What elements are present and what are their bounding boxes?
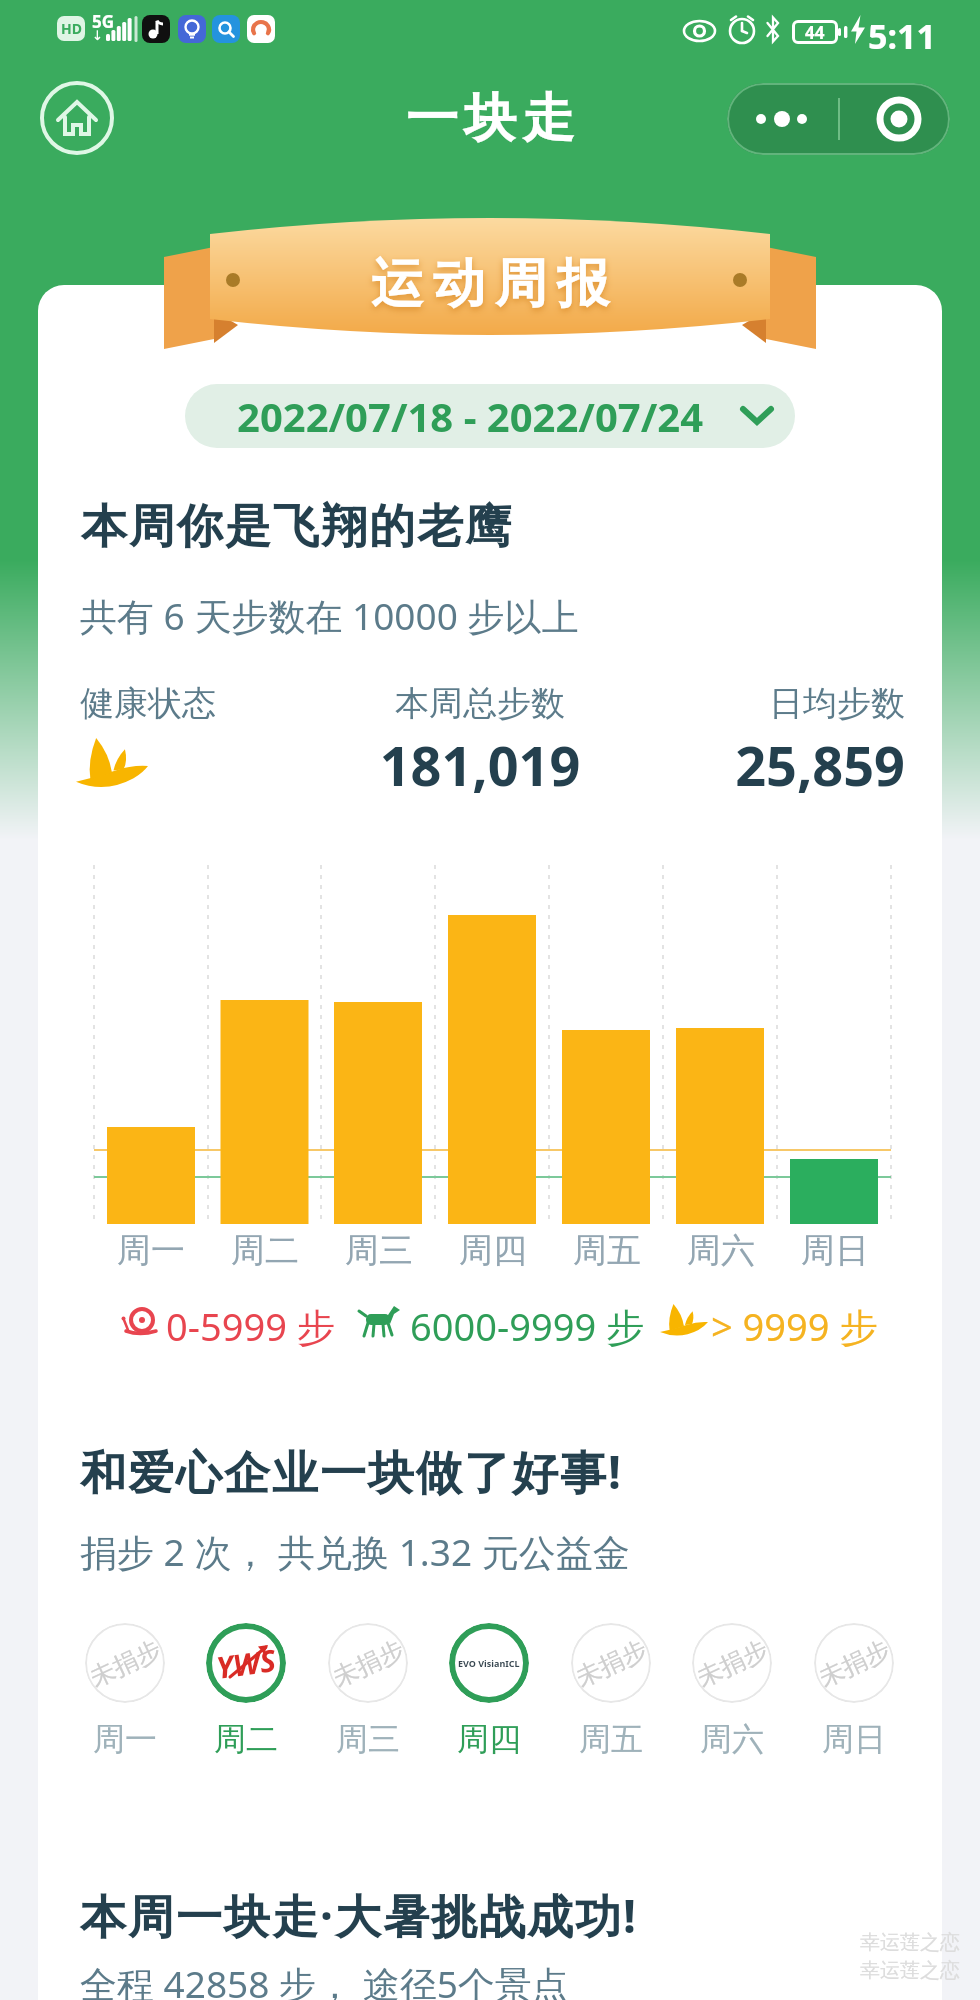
- staticText: 周六: [675, 1719, 789, 1759]
- staticText: 2022/07/18 - 2022/07/24: [237, 389, 704, 443]
- staticText: 周六: [664, 1229, 778, 1272]
- button[interactable]: [727, 83, 950, 155]
- staticText: EVO VisianICL: [458, 1657, 520, 1669]
- button[interactable]: 未捐步: [328, 1623, 408, 1703]
- staticText: > 9999 步: [711, 1300, 878, 1352]
- staticText: 周一: [68, 1719, 182, 1759]
- staticText: 周三: [322, 1229, 436, 1272]
- button[interactable]: 未捐步: [814, 1623, 894, 1703]
- staticText: 未捐步: [328, 1634, 408, 1693]
- staticText: 181,019: [280, 728, 680, 802]
- staticText: 周三: [311, 1719, 425, 1759]
- staticText: 共有 6 天步数在 10000 步以上: [80, 590, 579, 641]
- staticText: 周二: [208, 1229, 322, 1272]
- staticText: 周日: [778, 1229, 892, 1272]
- button[interactable]: 未捐步: [692, 1623, 772, 1703]
- staticText: 周四: [436, 1229, 550, 1272]
- staticText: 6000-9999 步: [410, 1300, 645, 1352]
- staticText: 未捐步: [814, 1634, 894, 1693]
- staticText: 0-5999 步: [166, 1300, 335, 1352]
- staticText: 周日: [797, 1719, 911, 1759]
- staticText: 幸运莲之恋: [860, 1930, 960, 1955]
- staticText: 幸运莲之恋: [860, 1958, 960, 1983]
- staticText: 本周一块走·大暑挑战成功!: [80, 1884, 638, 1947]
- staticText: 周五: [550, 1229, 664, 1272]
- staticText: 未捐步: [571, 1634, 651, 1693]
- staticText: 未捐步: [85, 1634, 165, 1693]
- staticText: 5:11: [868, 13, 936, 59]
- staticText: 44: [805, 21, 825, 44]
- staticText: YWS: [213, 1639, 278, 1688]
- button[interactable]: [40, 81, 114, 155]
- button[interactable]: EVO VisianICL: [449, 1623, 529, 1703]
- staticText: 本周你是飞翔的老鹰: [80, 498, 512, 556]
- staticText: 25,859: [580, 728, 905, 802]
- button[interactable]: YWS: [206, 1623, 286, 1703]
- staticText: 和爱心企业一块做了好事!: [80, 1440, 623, 1503]
- staticText: 日均步数: [580, 682, 905, 725]
- staticText: 捐步 2 次， 共兑换 1.32 元公益金: [80, 1526, 630, 1577]
- staticText: 本周总步数: [280, 682, 680, 725]
- button[interactable]: 未捐步: [85, 1623, 165, 1703]
- staticText: 周五: [554, 1719, 668, 1759]
- staticText: 运动周报: [366, 251, 614, 317]
- button[interactable]: 2022/07/18 - 2022/07/24: [185, 384, 795, 448]
- button[interactable]: 未捐步: [571, 1623, 651, 1703]
- staticText: 全程 42858 步， 途径5个景点: [80, 1958, 569, 2000]
- staticText: HD: [61, 19, 82, 38]
- staticText: 健康状态: [80, 682, 216, 725]
- staticText: ↓: [92, 28, 103, 43]
- staticText: 周四: [432, 1719, 546, 1759]
- staticText: 一块走: [403, 86, 577, 152]
- staticText: 周一: [94, 1229, 208, 1272]
- staticText: 5G: [92, 10, 115, 33]
- staticText: 未捐步: [692, 1634, 772, 1693]
- staticText: 周二: [189, 1719, 303, 1759]
